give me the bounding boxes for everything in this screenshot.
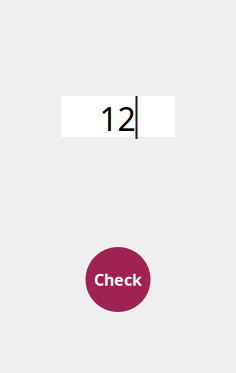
staticText: Check	[94, 269, 142, 290]
staticText: 12	[99, 97, 135, 140]
button[interactable]: Number input, 12	[61, 96, 175, 137]
button[interactable]: Check	[85, 247, 150, 312]
